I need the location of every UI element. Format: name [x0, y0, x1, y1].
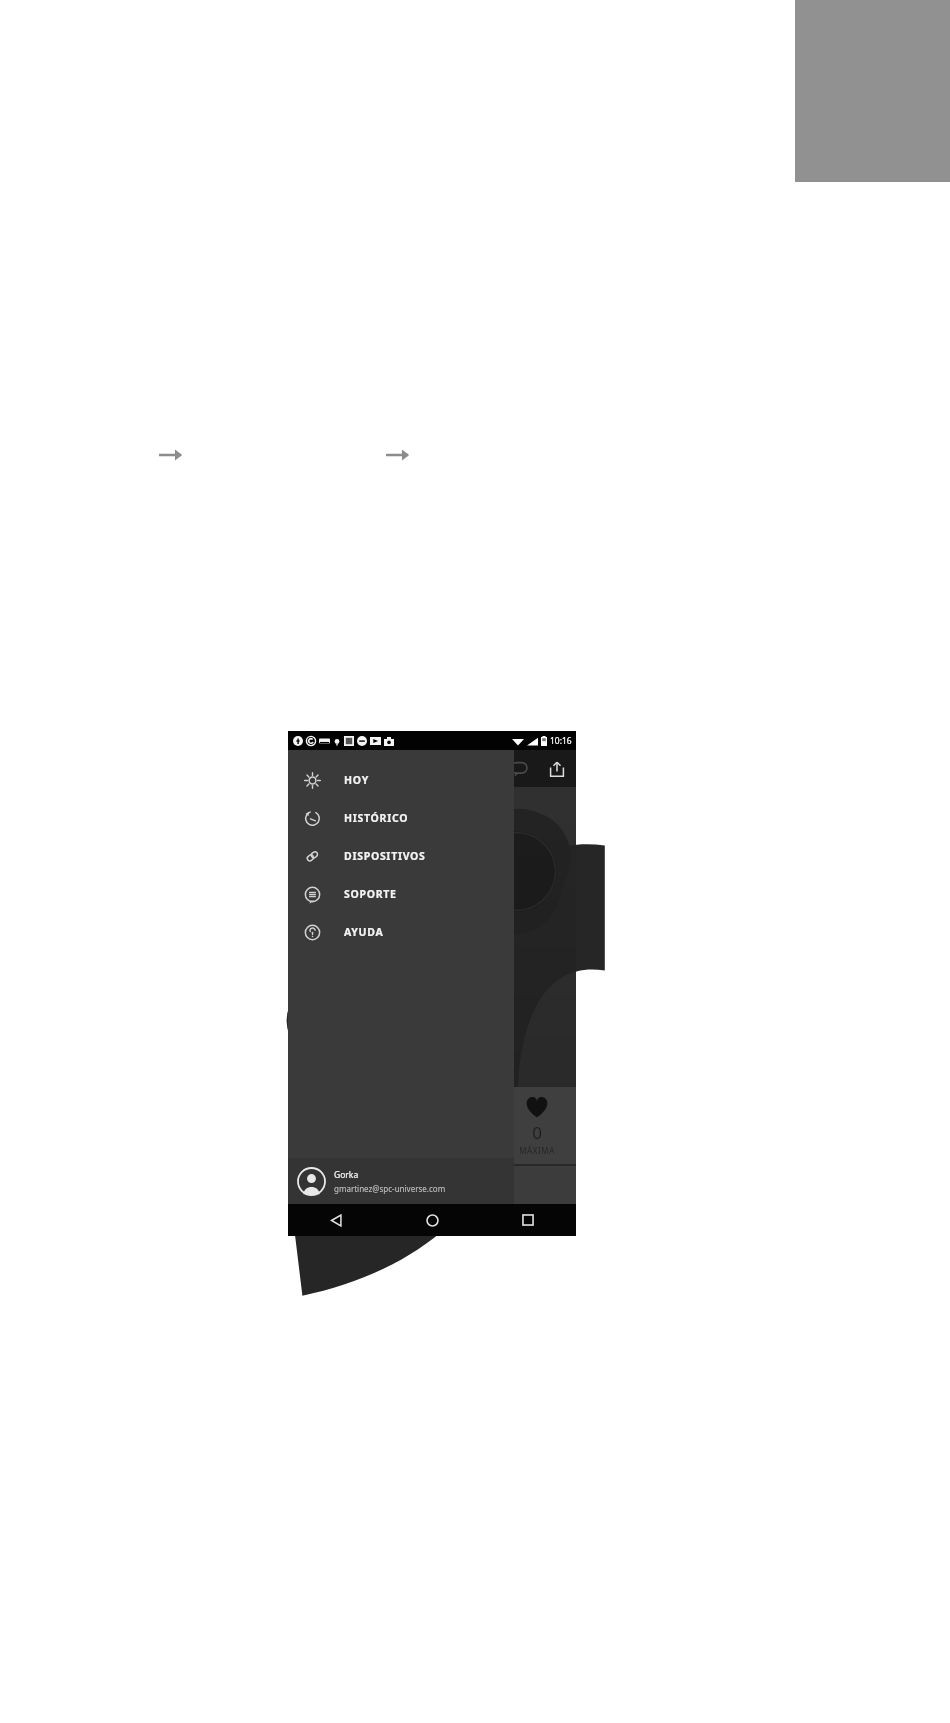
button[interactable]: Atrás	[288, 1204, 384, 1236]
button[interactable]: SOPORTE	[288, 875, 514, 913]
staticText: 0	[532, 1121, 542, 1144]
button[interactable]: AYUDA	[288, 913, 514, 951]
button[interactable]: Recientes	[480, 1204, 576, 1236]
button[interactable]: Gorka	[288, 1158, 514, 1204]
button[interactable]: DISPOSITIVOS	[288, 837, 514, 875]
button[interactable]: Compartir	[546, 758, 568, 780]
staticText: 10:16	[550, 735, 572, 747]
button[interactable]: HOY	[288, 761, 514, 799]
button[interactable]: 0	[498, 1087, 576, 1164]
button[interactable]: Comentarios	[508, 758, 530, 780]
staticText: HOY	[344, 773, 369, 787]
button[interactable]: HISTÓRICO	[288, 799, 514, 837]
staticText: AYUDA	[344, 925, 384, 939]
staticText: HISTÓRICO	[344, 811, 409, 825]
staticText: Gorka	[334, 1169, 359, 1181]
staticText: DISPOSITIVOS	[344, 849, 426, 863]
button[interactable]	[288, 1166, 576, 1204]
button[interactable]: Inicio	[384, 1204, 480, 1236]
staticText: SOPORTE	[344, 887, 397, 901]
staticText: gmartinez@spc-universe.com	[334, 1183, 446, 1194]
staticText: MÁXIMA	[519, 1145, 555, 1156]
